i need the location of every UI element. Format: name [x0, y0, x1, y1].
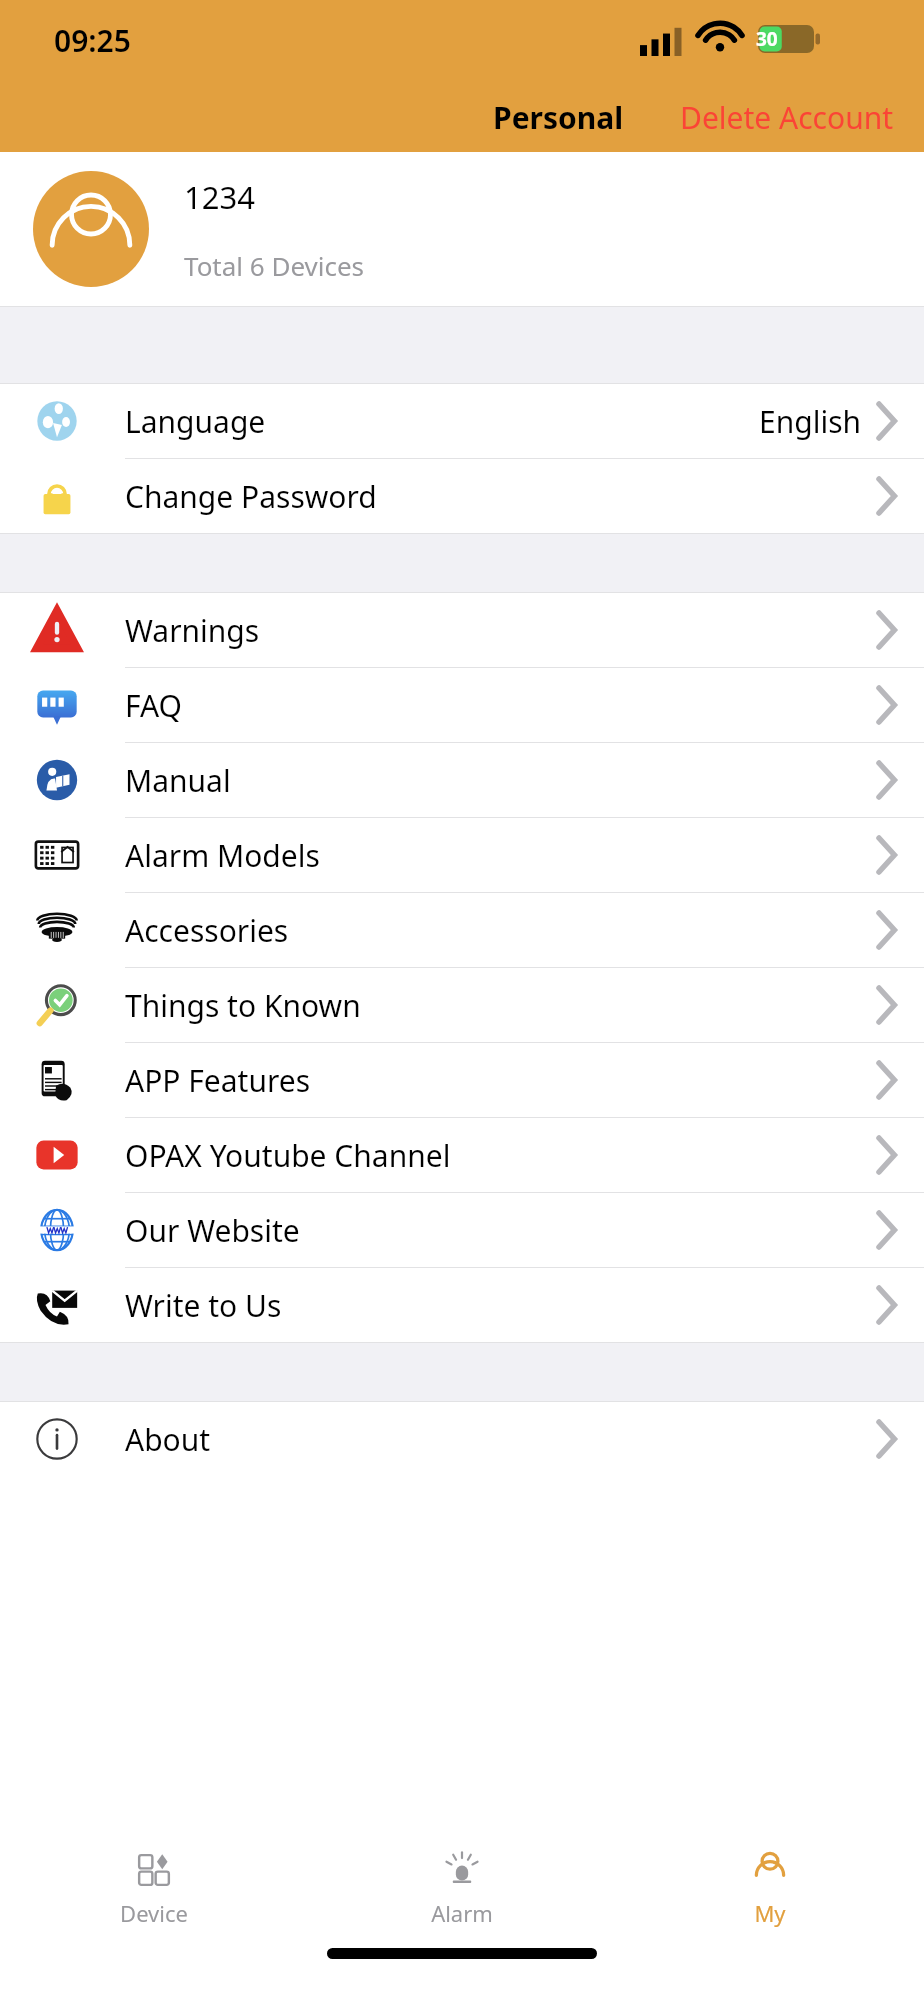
button[interactable]: Warnings [0, 593, 924, 668]
button[interactable]: Delete Account [674, 97, 900, 138]
button[interactable]: My [616, 1840, 924, 1936]
button[interactable]: 1234 [0, 152, 924, 306]
button[interactable]: Device [0, 1840, 308, 1936]
staticText: English [759, 401, 862, 442]
staticText: Manual [125, 760, 231, 801]
button[interactable]: Personal [487, 97, 630, 138]
button[interactable]: Manual [0, 743, 924, 818]
button[interactable]: Alarm Models [0, 818, 924, 893]
button[interactable]: OPAX Youtube Channel [0, 1118, 924, 1193]
staticText: Our Website [125, 1210, 300, 1251]
staticText: Write to Us [125, 1285, 282, 1326]
staticText: Alarm [431, 1898, 493, 1928]
staticText: 1234 [184, 176, 255, 218]
staticText: Personal [493, 97, 624, 138]
staticText: Change Password [125, 476, 377, 517]
button[interactable]: Language [0, 384, 924, 459]
button[interactable]: Write to Us [0, 1268, 924, 1342]
staticText: Things to Known [125, 985, 361, 1026]
staticText: Language [125, 401, 266, 442]
staticText: Alarm Models [125, 835, 320, 876]
staticText: OPAX Youtube Channel [125, 1135, 451, 1176]
button[interactable]: Accessories [0, 893, 924, 968]
staticText: Warnings [125, 610, 260, 651]
button[interactable]: Our Website [0, 1193, 924, 1268]
staticText: Device [120, 1898, 188, 1928]
button[interactable]: Things to Known [0, 968, 924, 1043]
staticText: 09:25 [54, 20, 131, 61]
staticText: About [125, 1419, 211, 1460]
staticText: Accessories [125, 910, 289, 951]
staticText: 30 [756, 26, 778, 52]
staticText: My [754, 1898, 786, 1928]
button[interactable]: Change Password [0, 459, 924, 533]
staticText: APP Features [125, 1060, 311, 1101]
button[interactable]: APP Features [0, 1043, 924, 1118]
button[interactable]: About [0, 1402, 924, 1476]
button[interactable]: Alarm [308, 1840, 616, 1936]
staticText: Total 6 Devices [184, 248, 365, 283]
button[interactable]: FAQ [0, 668, 924, 743]
staticText: FAQ [125, 685, 182, 726]
staticText: Delete Account [680, 97, 894, 138]
